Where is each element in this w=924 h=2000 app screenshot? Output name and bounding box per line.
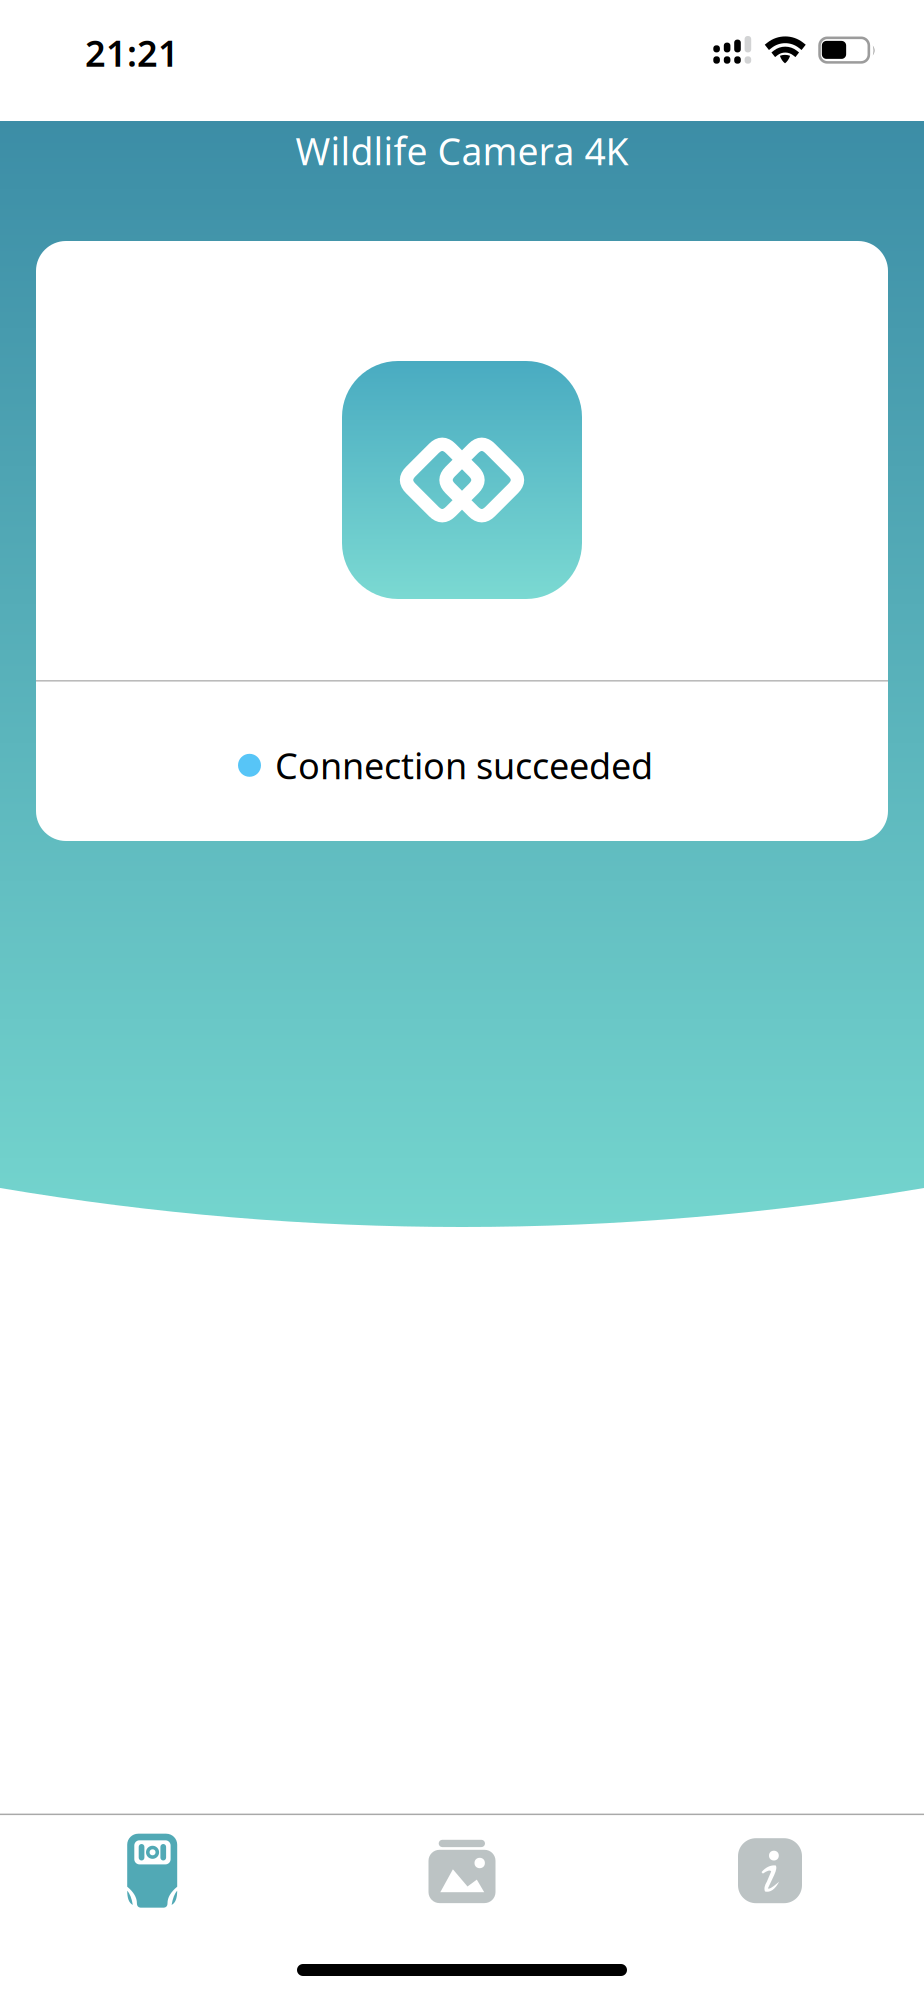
button[interactable]: Camera [0, 1815, 308, 1908]
staticText: Connection succeeded [275, 741, 653, 789]
staticText: Wildlife Camera 4K [295, 126, 628, 176]
staticText: 21:21 [85, 29, 179, 77]
button[interactable]: Info [616, 1815, 924, 1908]
button[interactable]: Gallery [308, 1815, 616, 1908]
